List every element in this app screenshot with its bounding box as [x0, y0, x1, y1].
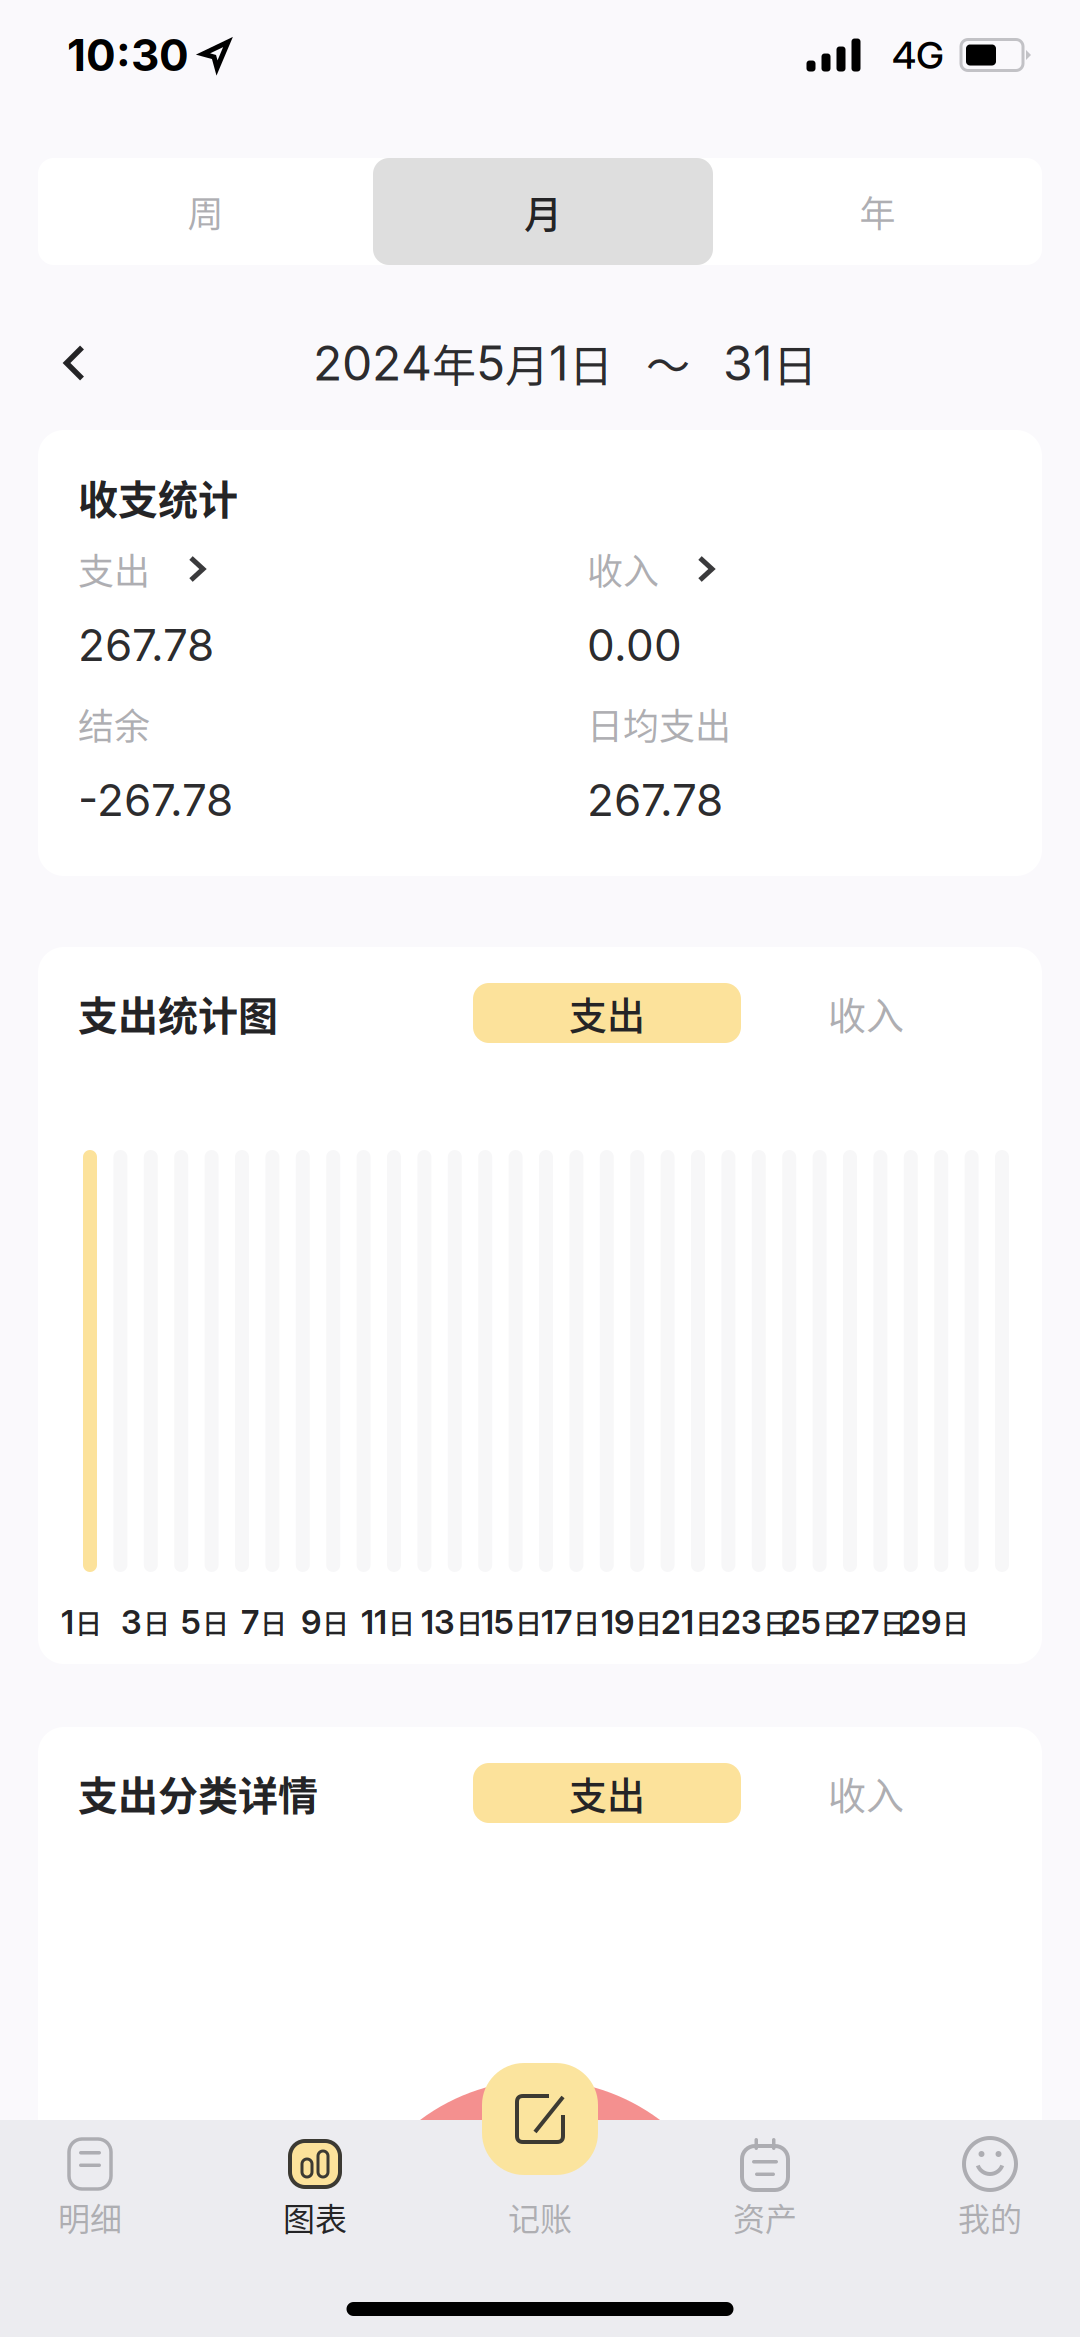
- staticText: 7: [241, 1602, 259, 1642]
- staticText: 31: [723, 334, 773, 392]
- staticText: 10:30: [67, 28, 189, 82]
- staticText: 15: [481, 1602, 514, 1642]
- staticText: ～: [646, 331, 690, 395]
- staticText: 1: [549, 334, 569, 392]
- staticText: 资产: [733, 2194, 797, 2240]
- staticText: 267.78: [587, 773, 723, 827]
- button[interactable]: 我的: [900, 2120, 1080, 2268]
- staticText: 2024: [313, 334, 432, 392]
- staticText: 9: [301, 1602, 321, 1642]
- staticText: -267.78: [78, 773, 233, 827]
- button[interactable]: 图表: [225, 2120, 405, 2268]
- staticText: 29: [901, 1602, 941, 1642]
- staticText: 0.00: [587, 618, 682, 672]
- staticText: 支出: [569, 985, 645, 1040]
- staticText: 日: [573, 1602, 600, 1642]
- button[interactable]: 明细: [0, 2120, 180, 2268]
- staticText: 25: [781, 1602, 821, 1642]
- staticText: 周: [187, 185, 223, 237]
- staticText: 记账: [508, 2194, 572, 2240]
- staticText: 1: [61, 1602, 74, 1642]
- staticText: 月: [505, 331, 549, 395]
- staticText: 13: [421, 1602, 455, 1642]
- staticText: 收支统计: [78, 468, 238, 526]
- staticText: 月: [524, 184, 562, 239]
- staticText: 27: [841, 1602, 879, 1642]
- staticText: 23: [721, 1602, 762, 1642]
- staticText: 5: [476, 334, 505, 392]
- staticText: 5: [181, 1602, 201, 1642]
- staticText: 日: [143, 1602, 170, 1642]
- button[interactable]: 年: [713, 158, 1042, 265]
- staticText: 日: [322, 1602, 349, 1642]
- staticText: 日: [388, 1602, 415, 1642]
- button[interactable]: 月: [373, 158, 713, 265]
- staticText: 日: [942, 1602, 969, 1642]
- staticText: 日: [456, 1602, 483, 1642]
- staticText: 日: [880, 1602, 907, 1642]
- staticText: 年: [432, 331, 476, 395]
- button[interactable]: 支出: [473, 1763, 741, 1823]
- staticText: 支出: [569, 1765, 645, 1820]
- button[interactable]: 周: [38, 158, 373, 265]
- staticText: 日: [75, 1602, 102, 1642]
- staticText: 结余: [78, 698, 150, 750]
- staticText: 明细: [58, 2194, 122, 2240]
- button[interactable]: 收入: [827, 983, 905, 1043]
- staticText: 19: [601, 1602, 634, 1642]
- button[interactable]: 收入: [587, 547, 1002, 670]
- staticText: 日: [515, 1602, 542, 1642]
- staticText: 3: [121, 1602, 142, 1642]
- staticText: 日: [773, 331, 817, 395]
- button[interactable]: 支出: [78, 547, 587, 670]
- button[interactable]: 支出: [473, 983, 741, 1043]
- staticText: 日: [202, 1602, 229, 1642]
- staticText: 日: [695, 1602, 722, 1642]
- button[interactable]: 返回: [38, 318, 110, 408]
- staticText: 日: [822, 1602, 849, 1642]
- staticText: 11: [361, 1602, 387, 1642]
- staticText: 收入: [587, 543, 659, 595]
- button[interactable]: 记账: [450, 2120, 630, 2268]
- staticText: 支出统计图: [78, 984, 278, 1042]
- staticText: 年: [859, 185, 895, 237]
- staticText: 收入: [828, 1765, 904, 1820]
- staticText: 日: [260, 1602, 287, 1642]
- staticText: 支出分类详情: [78, 1764, 318, 1822]
- staticText: 日均支出: [587, 698, 731, 750]
- staticText: 17: [541, 1602, 572, 1642]
- staticText: 支出: [78, 543, 150, 595]
- staticText: 日: [635, 1602, 662, 1642]
- button[interactable]: 记账: [482, 2063, 598, 2175]
- staticText: 267.78: [78, 618, 214, 672]
- staticText: 日: [569, 331, 613, 395]
- staticText: 4G: [892, 32, 944, 78]
- staticText: 21: [661, 1602, 694, 1642]
- button[interactable]: 收入: [827, 1763, 905, 1823]
- button[interactable]: 资产: [675, 2120, 855, 2268]
- staticText: 我的: [958, 2194, 1022, 2240]
- staticText: 图表: [283, 2194, 347, 2240]
- staticText: 收入: [828, 985, 904, 1040]
- staticText: 日: [763, 1602, 790, 1642]
